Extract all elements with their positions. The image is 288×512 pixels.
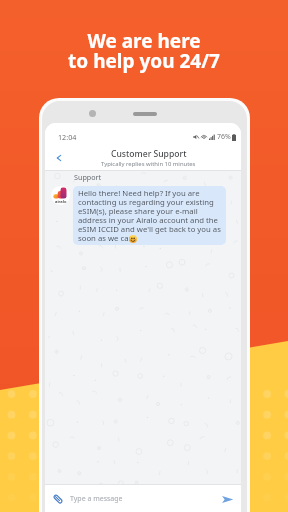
- staticText: Typically replies within 10 minutes: [101, 160, 196, 168]
- button[interactable]: Back: [52, 148, 66, 168]
- staticText: 76%: [217, 132, 231, 142]
- button[interactable]: Hello there! Need help? If you are conta…: [73, 186, 226, 245]
- button[interactable]: Attach: [52, 493, 64, 505]
- button[interactable]: Send: [221, 493, 234, 506]
- button[interactable]: Back: [45, 142, 241, 171]
- staticText: 12:04: [58, 132, 77, 142]
- staticText: Hello there! Need help? If you are conta…: [78, 188, 221, 243]
- staticText: Support: [74, 172, 102, 182]
- staticText: Customer Support: [111, 148, 187, 160]
- staticText: airalo: [55, 199, 67, 204]
- staticText: Type a message: [70, 494, 123, 504]
- staticText: We are here to help you 24/7: [0, 28, 288, 74]
